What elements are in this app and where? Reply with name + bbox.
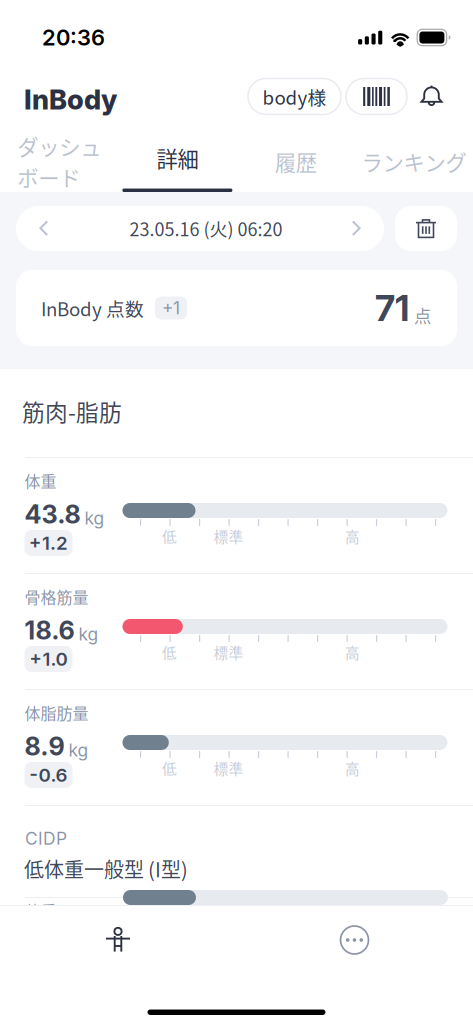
button[interactable]: Notifications [419, 78, 444, 114]
button[interactable]: ランキング [355, 131, 473, 192]
staticText: 体重 [25, 899, 57, 922]
staticText: 低体重一般型 (I型) [24, 854, 188, 883]
staticText: 点 [414, 303, 431, 328]
staticText: 低 [162, 641, 177, 663]
staticText: 体重 [24, 469, 56, 492]
staticText: +1.2 [29, 532, 68, 554]
staticText: kg [78, 624, 98, 645]
staticText: -0.6 [29, 764, 67, 786]
staticText: InBody [24, 83, 117, 116]
staticText: 23.05.16 (火) 06:20 [129, 215, 282, 242]
staticText: 71 [375, 286, 409, 330]
button[interactable]: ダッシュボード [0, 131, 118, 192]
staticText: CIDP [25, 828, 67, 849]
staticText: 低 [162, 525, 177, 547]
staticText: 履歴 [275, 146, 317, 177]
staticText: kg [84, 508, 104, 529]
staticText: 体脂肪量 [24, 701, 88, 724]
staticText: 43.8 [24, 499, 80, 530]
staticText: 8.9 [24, 731, 64, 762]
staticText: 標準 [213, 757, 243, 779]
staticText: ランキング [361, 146, 466, 177]
staticText: +1 [162, 297, 180, 318]
button[interactable]: Body [0, 906, 236, 974]
staticText: kg [68, 740, 88, 761]
button[interactable]: 詳細 [118, 131, 236, 192]
staticText: body様 [262, 83, 326, 110]
staticText: 高 [345, 525, 360, 547]
staticText: 20:36 [42, 24, 105, 51]
staticText: 標準 [213, 525, 243, 547]
button[interactable]: More [236, 906, 473, 974]
staticText: ダッシュボード [17, 131, 101, 192]
staticText: 筋肉-脂肪 [22, 395, 122, 427]
staticText: InBody 点数 [41, 294, 144, 321]
button[interactable]: Barcode [346, 78, 407, 114]
staticText: 骨格筋量 [24, 585, 88, 608]
staticText: 高 [345, 757, 360, 779]
staticText: 低 [162, 757, 177, 779]
button[interactable]: Delete [395, 206, 457, 251]
button[interactable]: 23.05.16 (火) 06:20 [16, 206, 384, 251]
button[interactable]: body様 [248, 78, 341, 114]
staticText: +1.0 [29, 648, 67, 670]
staticText: 高 [345, 641, 360, 663]
staticText: 標準 [213, 641, 243, 663]
button[interactable]: 履歴 [236, 131, 355, 192]
staticText: 詳細 [156, 143, 198, 173]
staticText: 18.6 [24, 615, 74, 646]
